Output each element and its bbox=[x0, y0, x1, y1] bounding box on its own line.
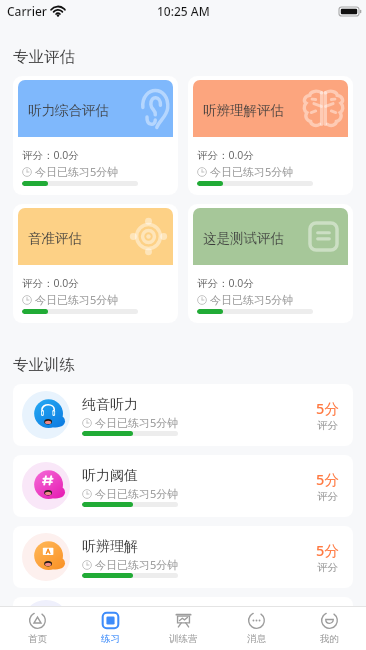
staticText: 今日已练习5分钟 bbox=[95, 557, 179, 572]
staticText: 听辨理解 bbox=[82, 538, 138, 556]
staticText: 5分 bbox=[316, 398, 339, 418]
staticText: 首页 bbox=[28, 633, 47, 645]
staticText: 今日已练习5分钟 bbox=[35, 164, 119, 179]
staticText: 这是测试评估 bbox=[203, 230, 284, 247]
button[interactable]: 纯音听力 bbox=[13, 384, 353, 446]
staticText: 评分：0.0分 bbox=[197, 276, 254, 290]
button[interactable]: 训练营 bbox=[147, 607, 220, 650]
button[interactable]: 听力综合评估 bbox=[13, 76, 178, 195]
staticText: 5分 bbox=[316, 540, 339, 560]
staticText: 纯音听力 bbox=[82, 396, 138, 414]
button[interactable]: 听辨理解评估 bbox=[188, 76, 353, 195]
staticText: 语音识别 bbox=[82, 605, 138, 623]
staticText: 消息 bbox=[247, 633, 266, 645]
button[interactable]: 练习 bbox=[74, 607, 147, 650]
button[interactable]: 语音识别 bbox=[13, 597, 353, 650]
staticText: 评分 bbox=[317, 628, 338, 641]
staticText: 音准评估 bbox=[28, 230, 82, 247]
staticText: 评分：0.0分 bbox=[197, 148, 254, 162]
staticText: 10:25 AM bbox=[157, 3, 210, 19]
staticText: 今日已练习5分钟 bbox=[95, 486, 179, 501]
staticText: 今日已练习5分钟 bbox=[95, 415, 179, 430]
staticText: 训练营 bbox=[169, 633, 198, 645]
button[interactable]: 听力阈值 bbox=[13, 455, 353, 517]
staticText: 今日已练习5分钟 bbox=[210, 164, 294, 179]
staticText: 听辨理解评估 bbox=[203, 102, 284, 119]
staticText: 今日已练习5分钟 bbox=[95, 624, 179, 639]
staticText: 专业训练 bbox=[13, 355, 75, 375]
staticText: 5分 bbox=[316, 469, 339, 489]
staticText: 今日已练习5分钟 bbox=[35, 292, 119, 307]
staticText: 练习 bbox=[101, 633, 120, 645]
button[interactable]: 首页 bbox=[0, 607, 74, 650]
staticText: 我的 bbox=[320, 633, 339, 645]
staticText: 评分 bbox=[317, 490, 338, 503]
staticText: 5分 bbox=[316, 607, 339, 627]
staticText: 评分：0.0分 bbox=[22, 276, 79, 290]
button[interactable]: 音准评估 bbox=[13, 204, 178, 323]
staticText: 评分 bbox=[317, 419, 338, 432]
staticText: 听力阈值 bbox=[82, 467, 138, 485]
staticText: 专业评估 bbox=[13, 47, 75, 67]
button[interactable]: 这是测试评估 bbox=[188, 204, 353, 323]
staticText: Carrier bbox=[7, 3, 47, 19]
staticText: 评分 bbox=[317, 561, 338, 574]
button[interactable]: 我的 bbox=[293, 607, 366, 650]
staticText: 听力综合评估 bbox=[28, 102, 109, 119]
staticText: 评分：0.0分 bbox=[22, 148, 79, 162]
button[interactable]: 听辨理解 bbox=[13, 526, 353, 588]
button[interactable]: 消息 bbox=[220, 607, 293, 650]
staticText: 今日已练习5分钟 bbox=[210, 292, 294, 307]
